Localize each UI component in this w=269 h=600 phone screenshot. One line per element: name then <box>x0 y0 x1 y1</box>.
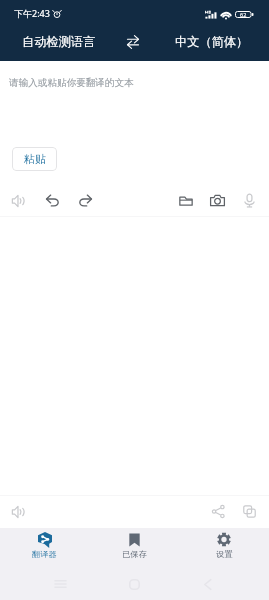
button[interactable]: Microphone <box>241 192 258 209</box>
staticText: 中文（简体） <box>175 34 249 49</box>
button[interactable]: Home <box>122 577 146 591</box>
staticText: 自动检测语言 <box>22 34 96 49</box>
button[interactable]: 中文（简体） <box>158 22 266 61</box>
staticText: 已保存 <box>122 549 147 559</box>
button[interactable]: 已保存 <box>89 528 179 567</box>
button[interactable]: Documents <box>177 192 194 209</box>
staticText: 粘贴 <box>24 152 46 166</box>
button[interactable]: Redo <box>77 192 94 209</box>
button[interactable]: 翻译器 <box>0 528 89 567</box>
staticText: 翻译器 <box>32 549 57 559</box>
button[interactable]: Share <box>210 503 227 520</box>
button[interactable]: Recents <box>48 577 72 591</box>
button[interactable]: 设置 <box>179 528 269 567</box>
staticText: 请输入或粘贴你要翻译的文本 <box>9 77 134 89</box>
button[interactable]: 自动检测语言 <box>5 22 113 61</box>
staticText: 设置 <box>216 549 233 559</box>
button[interactable]: Swap languages <box>121 33 145 50</box>
button[interactable]: Camera <box>209 192 226 209</box>
button[interactable]: Copy <box>241 503 258 520</box>
button[interactable]: Listen <box>10 192 27 209</box>
staticText: 下午2:43 <box>14 7 50 19</box>
staticText: 62 <box>240 11 247 18</box>
button[interactable]: Undo <box>44 192 61 209</box>
button[interactable]: 粘贴 <box>12 147 57 171</box>
button[interactable]: Listen to translation <box>10 503 27 520</box>
